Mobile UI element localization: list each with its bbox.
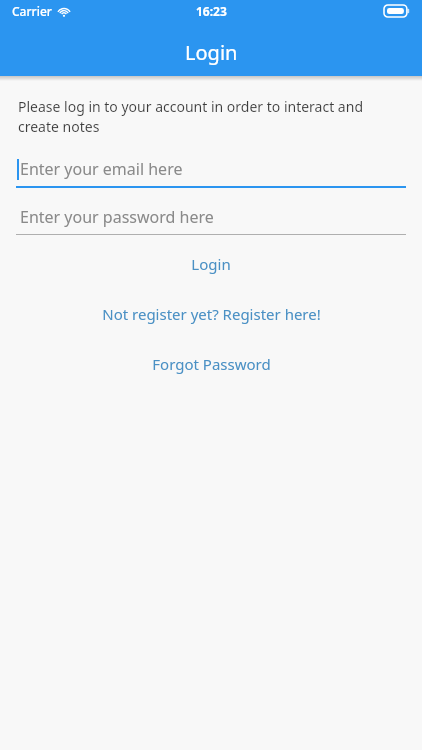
staticText: Not register yet? Register here! bbox=[102, 304, 321, 324]
staticText: Login bbox=[185, 39, 238, 66]
staticText: Please log in to your account in order t… bbox=[18, 97, 388, 136]
staticText: 16:23 bbox=[196, 3, 227, 19]
staticText: Forgot Password bbox=[152, 354, 271, 374]
button[interactable]: Forgot Password bbox=[0, 352, 422, 376]
button[interactable]: Login bbox=[0, 252, 422, 276]
button[interactable]: Enter your password here bbox=[16, 200, 406, 235]
staticText: Carrier bbox=[12, 3, 52, 19]
staticText: Enter your email here bbox=[20, 158, 183, 180]
staticText: Login bbox=[191, 254, 231, 274]
staticText: Enter your password here bbox=[20, 206, 214, 228]
button[interactable]: Not register yet? Register here! bbox=[0, 302, 422, 326]
button[interactable]: Enter your email here bbox=[16, 152, 406, 188]
